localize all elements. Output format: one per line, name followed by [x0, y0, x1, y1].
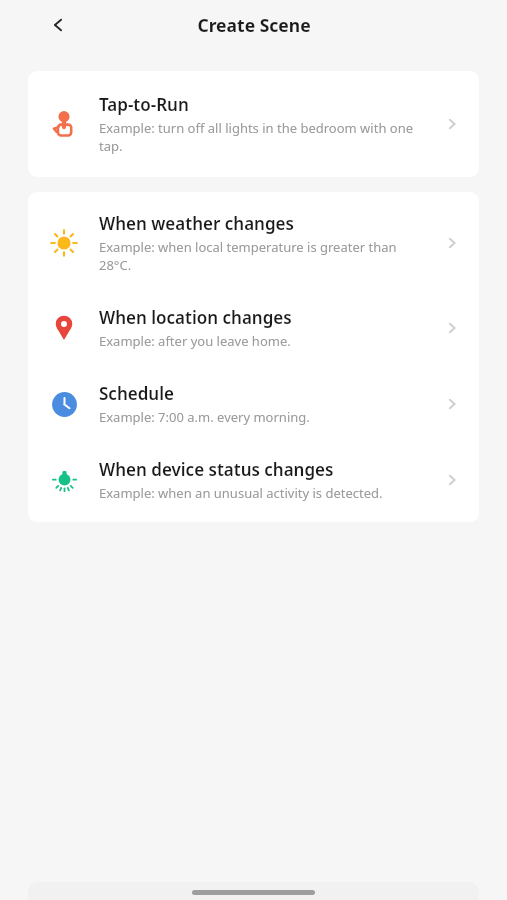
button[interactable]: Back	[40, 7, 76, 43]
staticText: Example: when an unusual activity is det…	[99, 484, 383, 502]
staticText: When location changes	[99, 306, 292, 329]
staticText: When device status changes	[99, 458, 334, 481]
button[interactable]: When location changes	[28, 290, 479, 366]
button[interactable]: Schedule	[28, 366, 479, 442]
staticText: Create Scene	[197, 13, 311, 37]
staticText: When weather changes	[99, 212, 294, 235]
staticText: Example: turn off all lights in the bedr…	[99, 119, 431, 155]
staticText: Example: after you leave home.	[99, 332, 291, 350]
staticText: Schedule	[99, 382, 174, 405]
button[interactable]: When device status changes	[28, 442, 479, 522]
button[interactable]: Tap-to-Run	[28, 71, 479, 177]
button[interactable]: When weather changes	[28, 192, 479, 290]
staticText: Example: when local temperature is great…	[99, 238, 431, 274]
staticText: Example: 7:00 a.m. every morning.	[99, 408, 310, 426]
staticText: Tap-to-Run	[99, 93, 189, 116]
